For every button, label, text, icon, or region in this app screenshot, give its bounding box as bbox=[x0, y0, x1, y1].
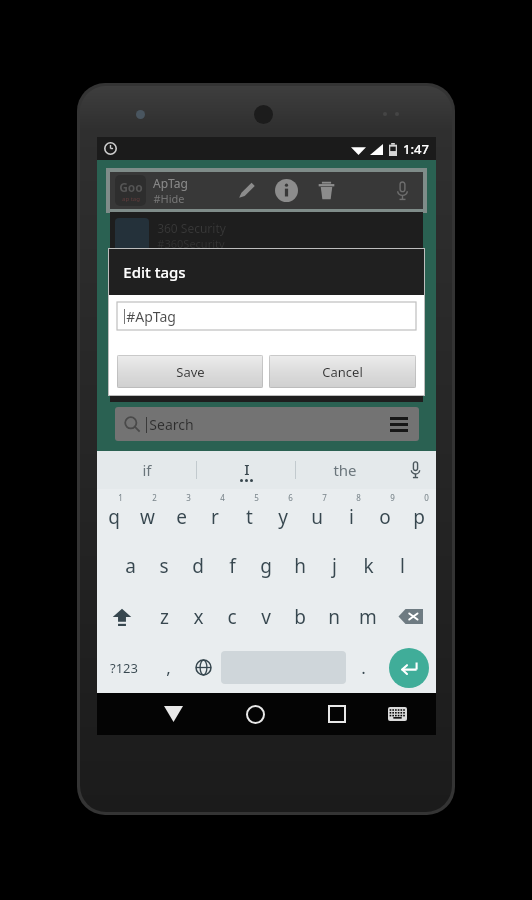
button[interactable]: m bbox=[351, 591, 385, 642]
staticText: #360Security bbox=[157, 236, 225, 251]
staticText: ap tag bbox=[122, 195, 140, 203]
button[interactable]: Edit bbox=[226, 172, 266, 209]
staticText: , bbox=[166, 656, 171, 679]
staticText: Search bbox=[149, 415, 194, 434]
staticText: e bbox=[176, 504, 187, 530]
staticText: j bbox=[332, 553, 337, 579]
button[interactable]: . bbox=[346, 642, 381, 693]
staticText: ?123 bbox=[110, 659, 138, 677]
button[interactable]: Recents bbox=[314, 693, 360, 735]
button[interactable]: 6 bbox=[266, 489, 300, 540]
staticText: c bbox=[227, 604, 237, 630]
button[interactable]: Microphone bbox=[394, 451, 436, 489]
staticText: 5 bbox=[254, 492, 259, 503]
staticText: a bbox=[125, 553, 136, 579]
button[interactable]: s bbox=[147, 540, 181, 591]
button[interactable]: x bbox=[181, 591, 215, 642]
button[interactable]: Voice search bbox=[385, 174, 419, 208]
button[interactable]: Search bbox=[115, 407, 419, 441]
staticText: I bbox=[244, 459, 250, 479]
button[interactable]: b bbox=[283, 591, 317, 642]
button[interactable]: 7 bbox=[300, 489, 334, 540]
button[interactable]: I bbox=[197, 451, 295, 489]
button[interactable]: 5 bbox=[232, 489, 266, 540]
staticText: Save bbox=[176, 363, 205, 381]
staticText: #ApTag bbox=[126, 307, 176, 326]
staticText: Cancel bbox=[322, 363, 363, 381]
button[interactable]: #ApTag bbox=[117, 302, 416, 330]
button[interactable]: 3 bbox=[164, 489, 198, 540]
button[interactable]: if bbox=[97, 451, 196, 489]
button[interactable]: Back bbox=[151, 693, 196, 735]
button[interactable]: 9 bbox=[368, 489, 402, 540]
staticText: h bbox=[294, 553, 306, 579]
staticText: 7 bbox=[322, 492, 327, 503]
staticText: v bbox=[261, 604, 271, 630]
staticText: l bbox=[400, 553, 405, 579]
button[interactable]: h bbox=[283, 540, 317, 591]
button[interactable]: Delete bbox=[306, 172, 346, 209]
button[interactable]: Goo bbox=[110, 172, 423, 209]
button[interactable]: Home bbox=[232, 693, 278, 735]
staticText: x bbox=[193, 604, 204, 630]
button[interactable]: Shift bbox=[97, 591, 147, 642]
button[interactable]: 0 bbox=[402, 489, 436, 540]
staticText: o bbox=[379, 504, 391, 530]
button[interactable]: k bbox=[351, 540, 385, 591]
staticText: m bbox=[359, 604, 377, 630]
staticText: b bbox=[294, 604, 306, 630]
button[interactable]: 2 bbox=[130, 489, 164, 540]
button[interactable]: Backspace bbox=[385, 591, 436, 642]
button[interactable]: n bbox=[317, 591, 351, 642]
button[interactable]: l bbox=[385, 540, 419, 591]
staticText: n bbox=[328, 604, 340, 630]
staticText: 6 bbox=[288, 492, 293, 503]
button[interactable]: 4 bbox=[198, 489, 232, 540]
staticText: w bbox=[140, 504, 155, 530]
other: Microphone bbox=[395, 181, 410, 201]
staticText: 0 bbox=[424, 492, 429, 503]
staticText: 2 bbox=[152, 492, 157, 503]
staticText: g bbox=[260, 553, 272, 579]
staticText: #Hide bbox=[153, 191, 185, 206]
staticText: Edit tags bbox=[123, 262, 186, 282]
button[interactable]: ?123 bbox=[97, 642, 151, 693]
staticText: y bbox=[278, 504, 288, 530]
staticText: d bbox=[192, 553, 204, 579]
staticText: 360 Security bbox=[157, 220, 226, 236]
button[interactable]: Change language bbox=[186, 642, 221, 693]
button[interactable]: 8 bbox=[334, 489, 368, 540]
button[interactable]: Save bbox=[117, 355, 263, 388]
button[interactable]: Switch keyboard bbox=[374, 693, 420, 735]
button[interactable]: Cancel bbox=[269, 355, 416, 388]
staticText: p bbox=[413, 504, 425, 530]
button[interactable]: Enter bbox=[381, 642, 436, 693]
staticText: 8 bbox=[356, 492, 361, 503]
button[interactable]: v bbox=[249, 591, 283, 642]
button[interactable]: the bbox=[296, 451, 394, 489]
staticText: the bbox=[333, 460, 357, 480]
staticText: 3 bbox=[186, 492, 191, 503]
staticText: f bbox=[229, 553, 236, 579]
button[interactable]: a bbox=[113, 540, 147, 591]
staticText: t bbox=[246, 504, 253, 530]
button[interactable]: c bbox=[215, 591, 249, 642]
button[interactable]: g bbox=[249, 540, 283, 591]
staticText: r bbox=[211, 504, 219, 530]
button[interactable]: j bbox=[317, 540, 351, 591]
staticText: . bbox=[361, 656, 366, 679]
staticText: ApTag bbox=[153, 175, 188, 191]
staticText: k bbox=[363, 553, 374, 579]
staticText: 1 bbox=[118, 492, 123, 503]
button[interactable]: Info bbox=[266, 172, 306, 209]
staticText: q bbox=[108, 504, 120, 530]
button[interactable]: f bbox=[215, 540, 249, 591]
button[interactable]: 1 bbox=[97, 489, 130, 540]
other: Microphone bbox=[409, 461, 422, 479]
button[interactable]: d bbox=[181, 540, 215, 591]
staticText: 1:47 bbox=[403, 140, 429, 158]
button[interactable]: z bbox=[147, 591, 181, 642]
staticText: 9 bbox=[390, 492, 395, 503]
button[interactable]: , bbox=[151, 642, 186, 693]
